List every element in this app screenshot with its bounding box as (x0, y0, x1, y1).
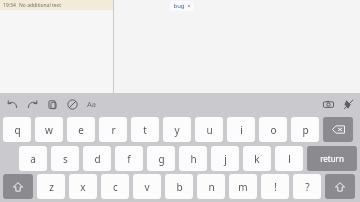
button[interactable]: v (133, 174, 161, 199)
staticText: r (111, 123, 116, 137)
button[interactable]: z (37, 174, 65, 199)
staticText: q (14, 123, 21, 137)
staticText: ? (305, 180, 310, 194)
button[interactable]: Aa (84, 97, 98, 111)
button[interactable]: i (227, 117, 255, 142)
button[interactable]: Shift (325, 174, 355, 199)
button[interactable]: ? (293, 174, 321, 199)
staticText: w (45, 123, 53, 137)
staticText: ! (274, 180, 277, 194)
staticText: m (238, 180, 248, 194)
button[interactable]: x (69, 174, 97, 199)
button[interactable]: j (211, 146, 239, 171)
button[interactable]: n (197, 174, 225, 199)
staticText: y (174, 123, 180, 137)
staticText: h (190, 152, 197, 166)
button[interactable]: k (243, 146, 271, 171)
button[interactable]: a (19, 146, 47, 171)
staticText: p (302, 123, 309, 137)
staticText: a (30, 152, 36, 166)
button[interactable]: m (229, 174, 257, 199)
staticText: i (240, 123, 243, 137)
button[interactable]: u (195, 117, 223, 142)
button[interactable]: g (147, 146, 175, 171)
button[interactable]: p (291, 117, 319, 142)
staticText: l (288, 152, 291, 166)
button[interactable]: q (3, 117, 31, 142)
button[interactable]: f (115, 146, 143, 171)
staticText: u (206, 123, 213, 137)
button[interactable]: s (51, 146, 79, 171)
button[interactable]: h (179, 146, 207, 171)
button[interactable]: return (307, 146, 357, 171)
staticText: t (143, 123, 147, 137)
button[interactable]: Autocorrect off (65, 97, 79, 111)
staticText: j (224, 152, 227, 166)
staticText: g (158, 152, 165, 166)
button[interactable]: t (131, 117, 159, 142)
button[interactable]: bug (170, 1, 194, 11)
button[interactable]: 19:54 (0, 0, 113, 10)
button[interactable]: Paste (45, 97, 59, 111)
button[interactable]: c (101, 174, 129, 199)
staticText: d (94, 152, 101, 166)
staticText: s (63, 152, 68, 166)
staticText: return (320, 153, 344, 164)
staticText: x (80, 180, 86, 194)
button[interactable]: l (275, 146, 303, 171)
staticText: Aa (87, 99, 96, 109)
button[interactable]: Shift (3, 174, 33, 199)
button[interactable]: ! (261, 174, 289, 199)
button[interactable]: e (67, 117, 95, 142)
staticText: o (270, 123, 277, 137)
staticText: n (208, 180, 215, 194)
staticText: bug (173, 2, 185, 10)
button[interactable]: Undo (5, 97, 19, 111)
button[interactable]: Redo (25, 97, 39, 111)
button[interactable]: w (35, 117, 63, 142)
staticText: f (127, 152, 131, 166)
button[interactable]: d (83, 146, 111, 171)
staticText: k (254, 152, 260, 166)
button[interactable]: Dictation (341, 97, 355, 111)
button[interactable]: o (259, 117, 287, 142)
button[interactable]: r (99, 117, 127, 142)
button[interactable]: b (165, 174, 193, 199)
staticText: z (49, 180, 54, 194)
button[interactable]: y (163, 117, 191, 142)
staticText: e (78, 123, 84, 137)
staticText: c (113, 180, 118, 194)
staticText: 19:54 (3, 2, 16, 9)
staticText: No additional text (19, 2, 61, 9)
staticText: v (144, 180, 150, 194)
button[interactable]: Camera (321, 97, 335, 111)
staticText: b (176, 180, 183, 194)
button[interactable]: Backspace (323, 117, 353, 142)
